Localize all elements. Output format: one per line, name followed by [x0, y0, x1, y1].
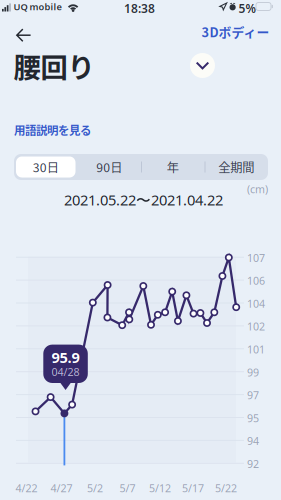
staticText: 18:38	[124, 0, 155, 16]
button[interactable]: Change measurement	[190, 53, 215, 78]
staticText: 5/22	[215, 481, 237, 495]
staticText: (cm)	[247, 182, 268, 196]
staticText: UQ mobile	[13, 0, 61, 13]
staticText: 92	[247, 457, 259, 471]
staticText: 106	[247, 274, 265, 288]
button[interactable]: 全期間	[204, 154, 268, 180]
button[interactable]: 用語説明を見る	[0, 116, 105, 143]
staticText: 107	[247, 251, 265, 265]
staticText: 95.9	[51, 348, 79, 367]
button[interactable]: 3Dボディー	[193, 15, 277, 48]
staticText: 102	[247, 319, 265, 334]
staticText: 101	[247, 342, 265, 356]
staticText: 2021.05.22〜2021.04.22	[64, 190, 223, 210]
staticText: 99	[247, 365, 259, 379]
staticText: 30日	[33, 158, 59, 176]
staticText: 5/2	[87, 481, 103, 495]
staticText: 用語説明を見る	[14, 121, 91, 138]
staticText: 腰回り	[13, 46, 94, 86]
staticText: 95	[247, 411, 259, 425]
staticText: 04/28	[51, 365, 79, 379]
staticText: 5/17	[182, 481, 204, 495]
button[interactable]: 30日	[14, 154, 77, 180]
staticText: 年	[167, 158, 179, 176]
staticText: 90日	[96, 158, 122, 176]
staticText: 全期間	[218, 158, 254, 176]
staticText: 5/7	[119, 481, 135, 495]
staticText: 4/27	[50, 481, 72, 495]
staticText: 97	[247, 388, 259, 402]
staticText: 4/22	[15, 481, 37, 495]
staticText: 3Dボディー	[201, 22, 269, 41]
button[interactable]: 90日	[77, 154, 141, 180]
staticText: 104	[247, 296, 265, 311]
staticText: 94	[247, 434, 259, 448]
button[interactable]: Back	[8, 21, 39, 49]
button[interactable]: 年	[141, 154, 204, 180]
staticText: 5%	[238, 0, 256, 16]
staticText: 5/12	[149, 481, 171, 495]
